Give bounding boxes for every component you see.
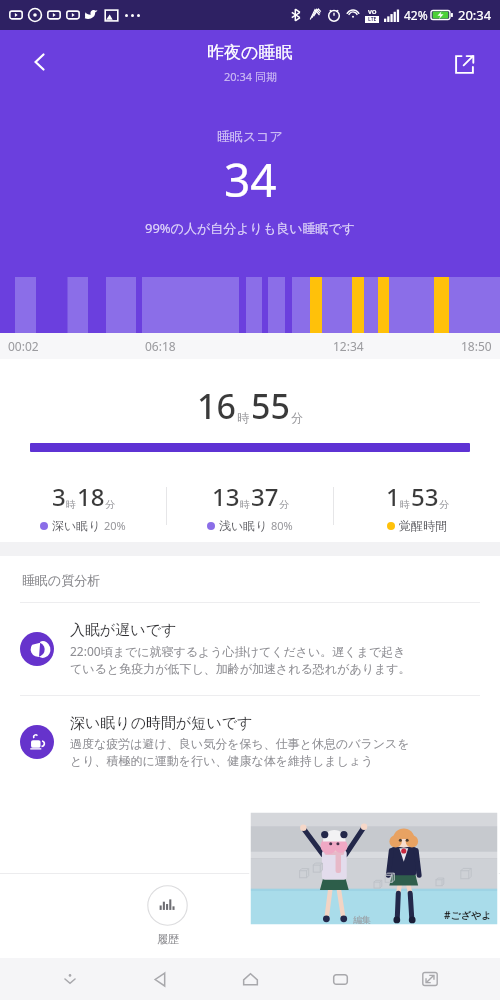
staticText: 履歴 [157,932,179,946]
button[interactable]: Fullscreen [410,959,450,999]
staticText: 睡眠の質分析 [22,572,101,588]
button[interactable]: Back [18,40,62,84]
button[interactable]: Share [442,42,486,86]
staticText: 20:34 [458,6,492,24]
button[interactable]: Hide [50,959,90,999]
staticText: LTE [368,16,377,23]
staticText: 22:00頃までに就寝するよう心掛けてください。遅くまで起き ていると免疫力が低… [70,643,411,677]
staticText: 53 [411,480,439,513]
staticText: 00:02 [8,338,39,354]
staticText: 18:50 [461,338,492,354]
button[interactable]: 深い眠りの時間が短いです [0,696,500,787]
button[interactable]: Video picture in picture [250,812,498,925]
staticText: 昨夜の睡眠 [207,42,293,63]
button[interactable]: Home [230,959,270,999]
staticText: 20% [104,518,126,533]
staticText: 55 [251,383,290,429]
staticText: 分 [105,498,115,511]
staticText: 13 [212,480,240,513]
staticText: 過度な疲労は避け、良い気分を保ち、仕事と休息のバランスを とり、積極的に運動を行… [70,736,410,769]
staticText: 浅い眠り [219,518,268,533]
button[interactable]: Back [140,959,180,999]
staticText: 時 [240,498,250,511]
staticText: #ござやよ [444,908,492,922]
staticText: 深い眠りの時間が短いです [70,714,253,733]
button[interactable]: 3 [0,480,166,533]
staticText: 分 [279,498,289,511]
staticText: 分 [291,410,303,425]
staticText: 80% [271,518,293,533]
staticText: 時 [66,498,76,511]
staticText: 時 [400,498,410,511]
staticText: 1 [386,480,400,513]
staticText: 12:34 [333,338,364,354]
staticText: VO [368,8,377,16]
staticText: 深い眠り [52,518,101,533]
staticText: 編集 [353,914,371,925]
staticText: 睡眠スコア [217,128,283,144]
button[interactable]: 1 [334,480,500,533]
staticText: 18 [77,480,105,513]
staticText: 37 [251,480,279,513]
button[interactable]: 13 [167,480,333,533]
staticText: 06:18 [145,338,176,354]
staticText: 16 [197,383,236,429]
staticText: 入眠が遅いです [70,621,177,640]
button[interactable]: 履歴 [147,885,188,946]
staticText: 20:34 同期 [224,69,277,84]
staticText: 34 [224,148,277,211]
button[interactable]: Recents [320,959,360,999]
staticText: 覚醒時間 [399,518,447,533]
staticText: 99%の人が自分よりも良い睡眠です [145,219,356,237]
staticText: 分 [439,498,449,511]
button[interactable]: 入眠が遅いです [0,603,500,695]
staticText: 42% [404,7,428,23]
staticText: 時 [237,410,249,425]
staticText: 3 [52,480,66,513]
